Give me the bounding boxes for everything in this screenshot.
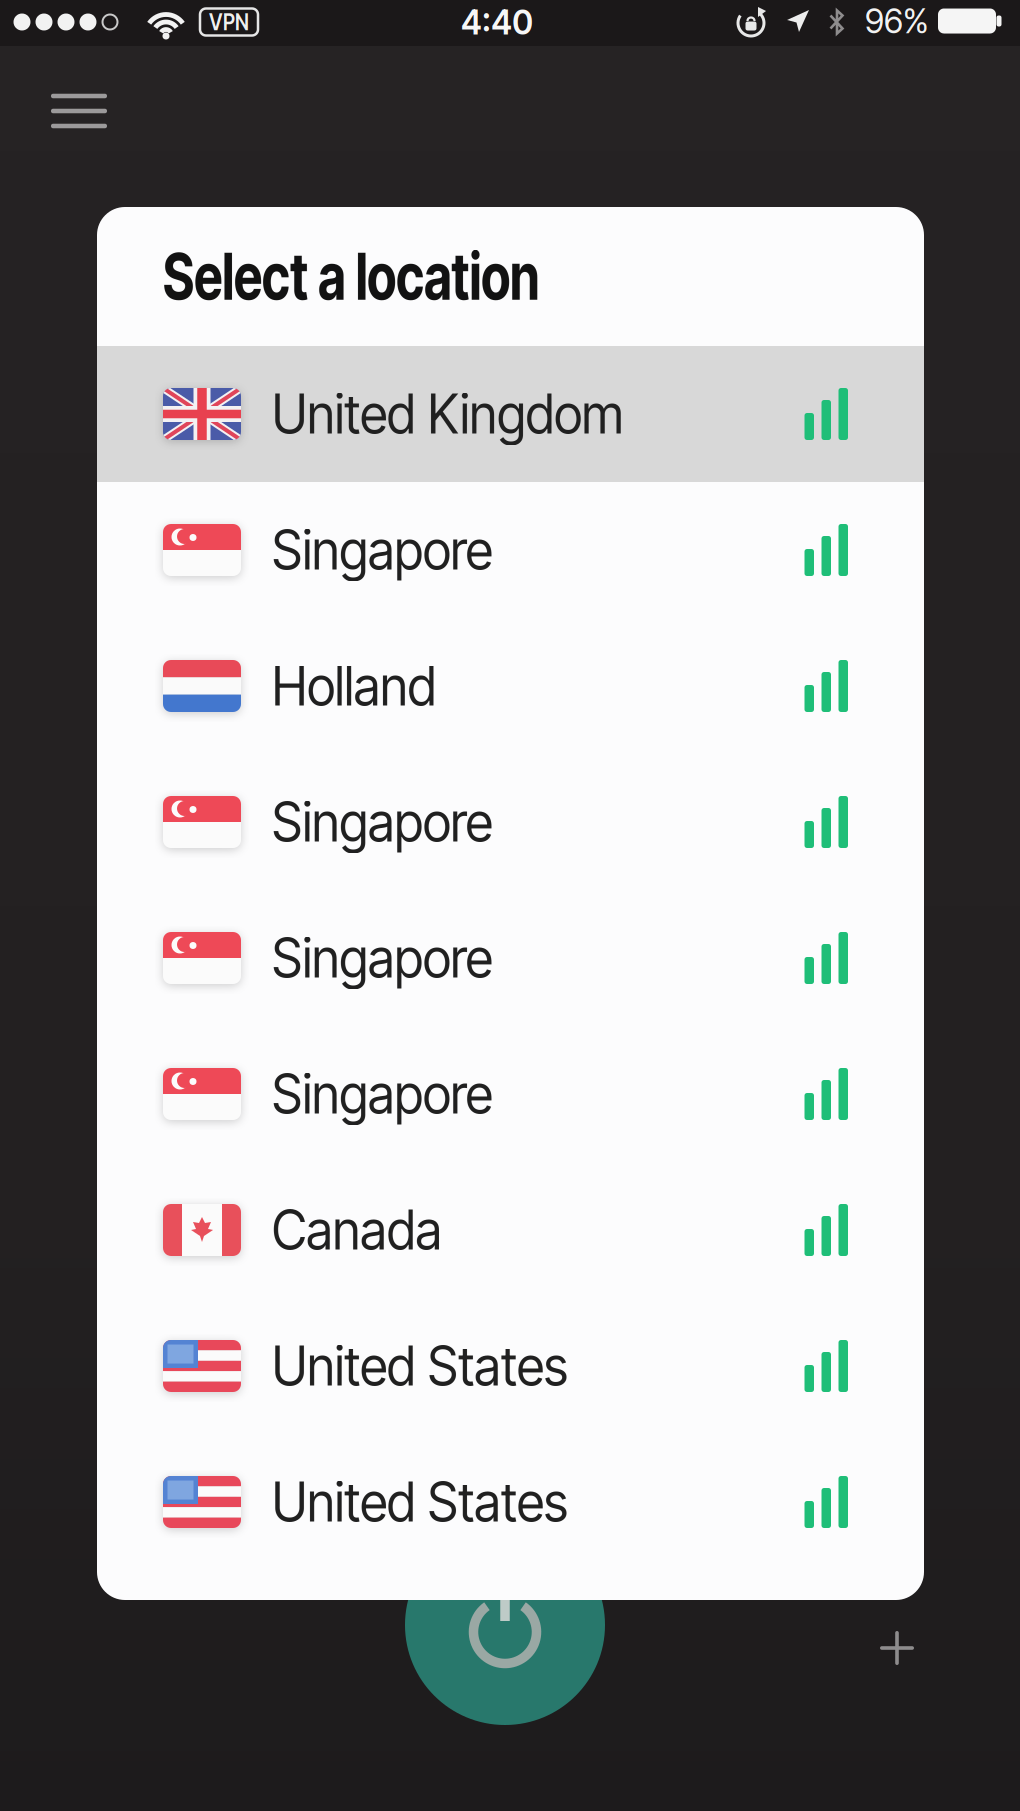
button[interactable]: United Kingdom bbox=[97, 346, 924, 482]
staticText: Holland bbox=[272, 654, 445, 718]
button[interactable]: Singapore bbox=[97, 1026, 924, 1162]
button[interactable]: Singapore bbox=[97, 482, 924, 618]
button[interactable]: United States bbox=[97, 1434, 924, 1570]
staticText: 96% bbox=[865, 1, 929, 41]
button[interactable]: Holland bbox=[97, 618, 924, 754]
staticText: Singapore bbox=[272, 926, 504, 990]
staticText: Singapore bbox=[272, 790, 504, 854]
button[interactable]: Menu bbox=[39, 82, 119, 140]
staticText: Canada bbox=[272, 1198, 451, 1262]
staticText: United States bbox=[272, 1470, 583, 1534]
button[interactable]: Canada bbox=[97, 1162, 924, 1298]
staticText: Singapore bbox=[272, 518, 504, 582]
button[interactable]: Singapore bbox=[97, 754, 924, 890]
staticText: VPN bbox=[206, 8, 252, 36]
button[interactable]: Singapore bbox=[97, 890, 924, 1026]
button[interactable]: United States bbox=[97, 1298, 924, 1434]
button[interactable]: Connect bbox=[405, 1525, 605, 1725]
staticText: Select a location bbox=[163, 238, 646, 315]
staticText: Singapore bbox=[272, 1062, 504, 1126]
button[interactable]: Add bbox=[867, 1618, 927, 1678]
staticText: United States bbox=[272, 1334, 583, 1398]
staticText: United Kingdom bbox=[272, 382, 642, 446]
staticText: 4:40 bbox=[459, 1, 535, 43]
